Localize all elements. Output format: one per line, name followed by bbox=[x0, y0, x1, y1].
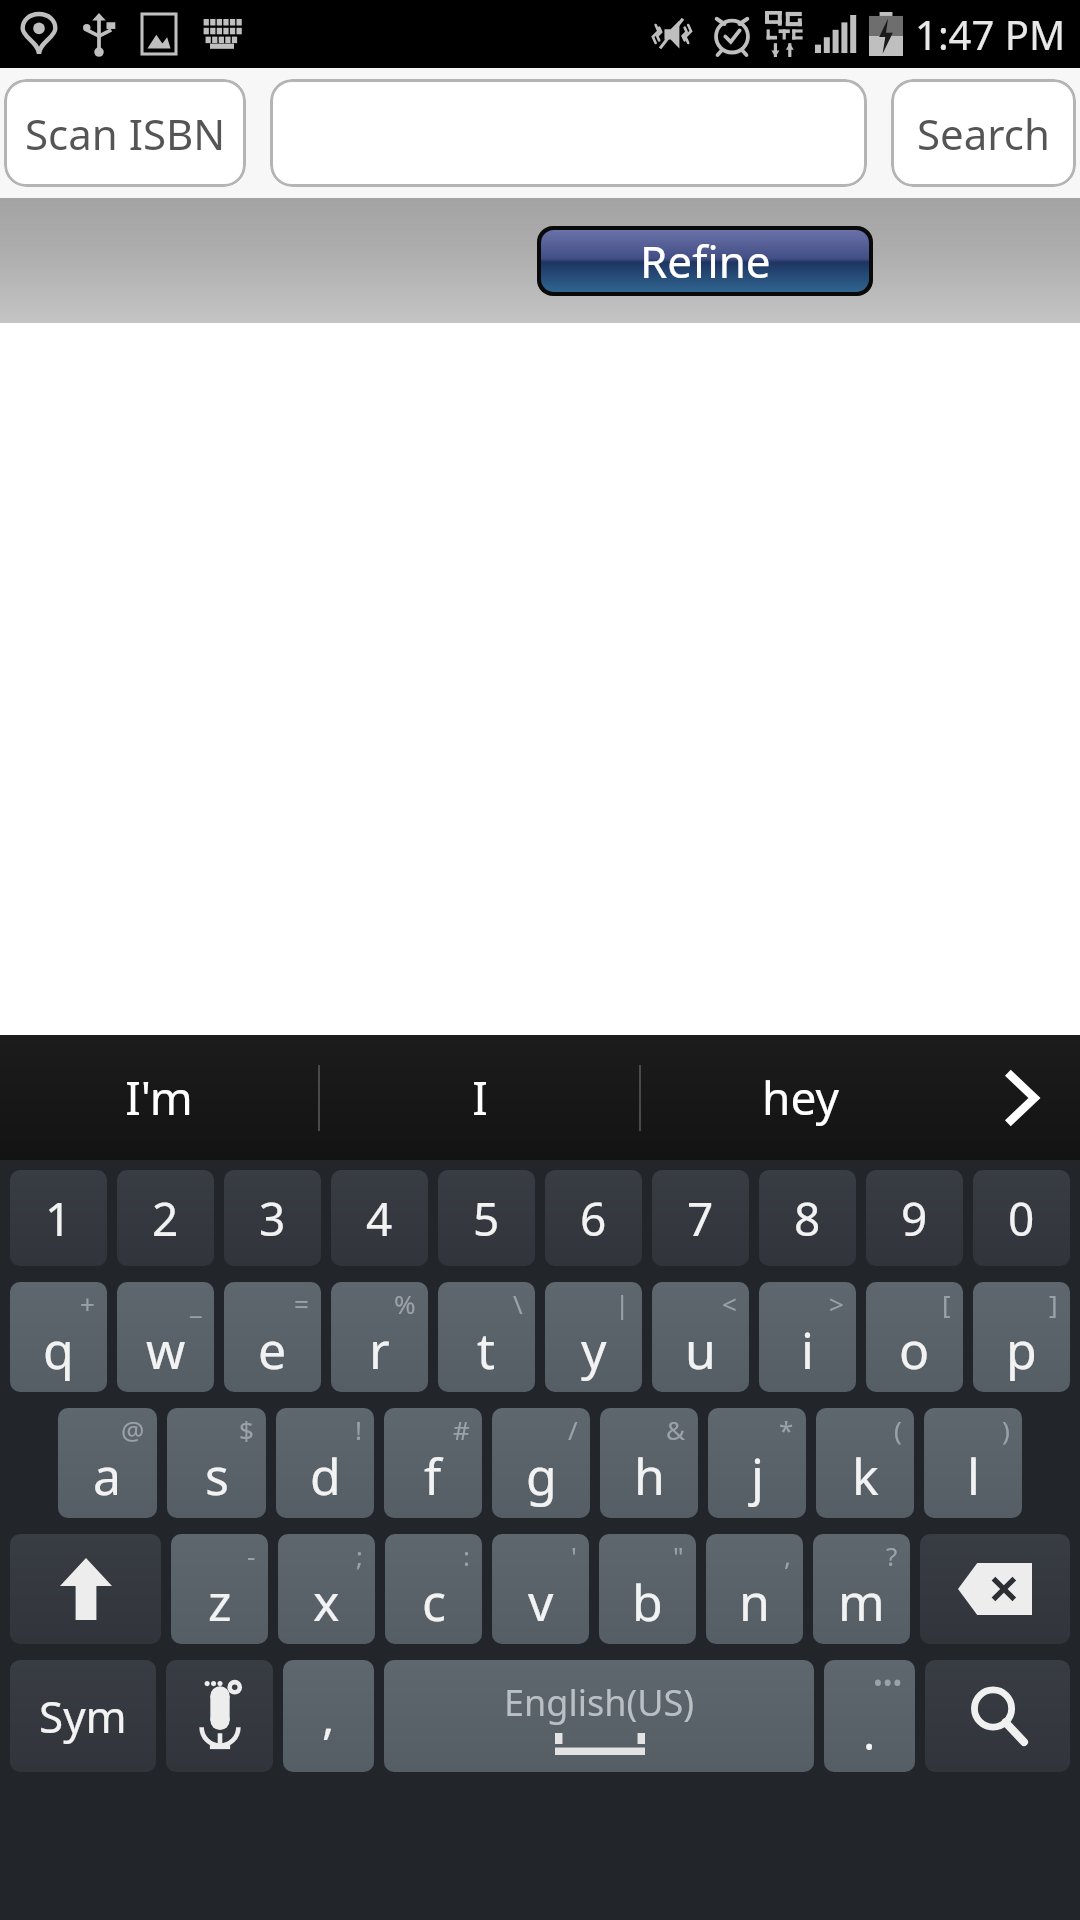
staticText: : bbox=[463, 1538, 470, 1573]
staticText: p bbox=[1006, 1316, 1037, 1384]
staticText: [ bbox=[942, 1286, 951, 1321]
button[interactable]: I'm bbox=[0, 1035, 318, 1160]
button[interactable]: Search bbox=[925, 1660, 1070, 1772]
staticText: t bbox=[477, 1316, 496, 1384]
button[interactable]: \ bbox=[438, 1282, 535, 1392]
staticText: ) bbox=[1002, 1412, 1010, 1447]
staticText: x bbox=[313, 1568, 340, 1636]
button[interactable]: 6 bbox=[545, 1170, 642, 1266]
staticText: d bbox=[310, 1442, 341, 1510]
button[interactable]: ; bbox=[278, 1534, 375, 1644]
button[interactable]: | bbox=[545, 1282, 642, 1392]
button[interactable]: Search input bbox=[270, 79, 867, 187]
staticText: , bbox=[784, 1538, 791, 1573]
staticText: 2 bbox=[152, 1187, 179, 1250]
button[interactable]: @ bbox=[58, 1408, 157, 1518]
button[interactable]: , bbox=[283, 1660, 374, 1772]
staticText: n bbox=[739, 1568, 770, 1636]
staticText: hey bbox=[762, 1066, 839, 1129]
button[interactable]: I bbox=[320, 1035, 639, 1160]
staticText: @ bbox=[121, 1412, 145, 1447]
staticText: b bbox=[632, 1568, 663, 1636]
button[interactable]: 5 bbox=[438, 1170, 535, 1266]
staticText: _ bbox=[190, 1286, 202, 1321]
staticText: % bbox=[394, 1286, 416, 1321]
staticText: w bbox=[146, 1316, 186, 1384]
staticText: Sym bbox=[39, 1686, 127, 1746]
button[interactable]: " bbox=[599, 1534, 696, 1644]
button[interactable]: Scan ISBN bbox=[4, 79, 246, 187]
button[interactable]: [ bbox=[866, 1282, 963, 1392]
staticText: 0 bbox=[1008, 1187, 1035, 1250]
button[interactable]: * bbox=[708, 1408, 806, 1518]
button[interactable]: ( bbox=[816, 1408, 914, 1518]
staticText: 8 bbox=[794, 1187, 821, 1250]
button[interactable]: + bbox=[10, 1282, 107, 1392]
button[interactable]: < bbox=[652, 1282, 749, 1392]
button[interactable]: 9 bbox=[866, 1170, 963, 1266]
staticText: & bbox=[666, 1412, 686, 1447]
staticText: y bbox=[581, 1316, 607, 1384]
staticText: < bbox=[722, 1286, 737, 1321]
button[interactable]: 4 bbox=[331, 1170, 428, 1266]
staticText: ] bbox=[1049, 1286, 1058, 1321]
button[interactable]: / bbox=[492, 1408, 590, 1518]
staticText: l bbox=[967, 1442, 980, 1510]
button[interactable]: _ bbox=[117, 1282, 214, 1392]
button[interactable]: 3 bbox=[224, 1170, 321, 1266]
button[interactable]: ••• bbox=[824, 1660, 915, 1772]
staticText: > bbox=[829, 1286, 844, 1321]
button[interactable]: ! bbox=[276, 1408, 374, 1518]
button[interactable]: 2 bbox=[117, 1170, 214, 1266]
button[interactable]: 7 bbox=[652, 1170, 749, 1266]
button[interactable]: Sym bbox=[10, 1660, 156, 1772]
button[interactable]: Shift bbox=[10, 1534, 161, 1644]
button[interactable]: More suggestions bbox=[960, 1035, 1080, 1160]
staticText: $ bbox=[239, 1412, 254, 1447]
button[interactable]: 1 bbox=[10, 1170, 107, 1266]
staticText: o bbox=[899, 1316, 930, 1384]
button[interactable]: hey bbox=[641, 1035, 960, 1160]
button[interactable]: - bbox=[171, 1534, 268, 1644]
button[interactable]: ? bbox=[813, 1534, 910, 1644]
staticText: e bbox=[258, 1316, 287, 1384]
staticText: " bbox=[673, 1538, 684, 1573]
staticText: ' bbox=[571, 1538, 577, 1573]
button[interactable]: Search bbox=[891, 79, 1076, 187]
staticText: I'm bbox=[125, 1066, 193, 1129]
staticText: Refine bbox=[640, 231, 771, 291]
button[interactable]: $ bbox=[167, 1408, 266, 1518]
staticText: v bbox=[528, 1568, 554, 1636]
button[interactable]: : bbox=[385, 1534, 482, 1644]
button[interactable]: > bbox=[759, 1282, 856, 1392]
button[interactable]: % bbox=[331, 1282, 428, 1392]
button[interactable]: # bbox=[384, 1408, 482, 1518]
staticText: 1:47 PM bbox=[915, 7, 1066, 61]
staticText: z bbox=[208, 1568, 232, 1636]
button[interactable]: ' bbox=[492, 1534, 589, 1644]
button[interactable]: & bbox=[600, 1408, 698, 1518]
staticText: # bbox=[453, 1412, 470, 1447]
staticText: ( bbox=[894, 1412, 902, 1447]
staticText: 1 bbox=[45, 1187, 72, 1250]
staticText: Scan ISBN bbox=[25, 105, 226, 162]
staticText: 9 bbox=[901, 1187, 928, 1250]
button[interactable]: 8 bbox=[759, 1170, 856, 1266]
staticText: * bbox=[779, 1412, 794, 1447]
staticText: . bbox=[863, 1701, 876, 1764]
staticText: j bbox=[751, 1442, 764, 1510]
staticText: English(US) bbox=[504, 1678, 695, 1727]
button[interactable]: Voice input bbox=[166, 1660, 273, 1772]
button[interactable]: ] bbox=[973, 1282, 1070, 1392]
button[interactable]: Space bbox=[384, 1660, 814, 1772]
button[interactable]: Refine bbox=[541, 230, 869, 292]
staticText: I bbox=[472, 1066, 488, 1129]
button[interactable]: Backspace bbox=[920, 1534, 1070, 1644]
staticText: / bbox=[568, 1412, 578, 1447]
button[interactable]: ) bbox=[924, 1408, 1022, 1518]
button[interactable]: 0 bbox=[973, 1170, 1070, 1266]
button[interactable]: , bbox=[706, 1534, 803, 1644]
button[interactable]: = bbox=[224, 1282, 321, 1392]
staticText: h bbox=[634, 1442, 665, 1510]
staticText: ••• bbox=[873, 1664, 903, 1699]
